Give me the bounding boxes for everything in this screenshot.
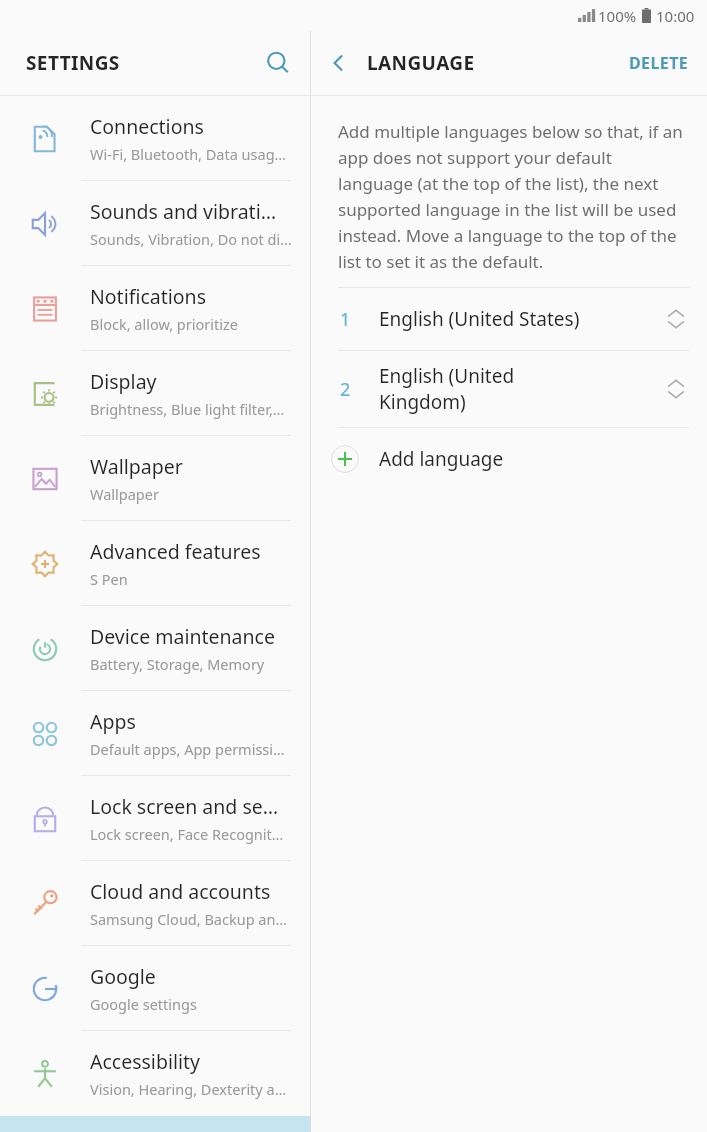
- button[interactable]: Device maintenance: [0, 606, 310, 691]
- button[interactable]: Notifications: [0, 266, 310, 351]
- button[interactable]: Advanced features: [0, 521, 310, 606]
- staticText: Display: [90, 368, 157, 395]
- staticText: Brightness, Blue light filter,…: [90, 399, 285, 419]
- staticText: 2: [340, 377, 351, 402]
- staticText: Connections: [90, 113, 204, 140]
- button[interactable]: Lock screen and se…: [0, 776, 310, 861]
- staticText: English (United Kingdom): [379, 363, 645, 415]
- button[interactable]: Google: [0, 946, 310, 1031]
- staticText: Sounds, Vibration, Do not di…: [90, 229, 292, 249]
- button[interactable]: 2: [311, 351, 707, 427]
- button[interactable]: Sounds and vibrati…: [0, 181, 310, 266]
- button[interactable]: 1: [311, 288, 707, 350]
- staticText: Sounds and vibrati…: [90, 198, 277, 225]
- staticText: English (United States): [379, 306, 645, 332]
- staticText: Block, allow, prioritize: [90, 314, 238, 334]
- staticText: Wallpaper: [90, 484, 159, 504]
- staticText: 1: [340, 307, 351, 332]
- staticText: Google settings: [90, 994, 197, 1014]
- staticText: Lock screen, Face Recognit…: [90, 824, 284, 844]
- button[interactable]: Cloud and accounts: [0, 861, 310, 946]
- button[interactable]: Reorder: [645, 288, 707, 350]
- staticText: LANGUAGE: [367, 50, 611, 76]
- staticText: 10:00: [656, 6, 695, 26]
- button[interactable]: Back: [311, 35, 367, 91]
- staticText: DELETE: [629, 52, 689, 74]
- staticText: Battery, Storage, Memory: [90, 654, 265, 674]
- staticText: Device maintenance: [90, 623, 275, 650]
- button[interactable]: Search: [250, 35, 306, 91]
- staticText: Lock screen and se…: [90, 793, 279, 820]
- staticText: Add language: [379, 446, 504, 472]
- button[interactable]: Apps: [0, 691, 310, 776]
- staticText: SETTINGS: [26, 50, 250, 76]
- button[interactable]: Display: [0, 351, 310, 436]
- staticText: Apps: [90, 708, 136, 735]
- staticText: Add multiple languages below so that, if…: [338, 120, 689, 273]
- staticText: S Pen: [90, 569, 128, 589]
- staticText: Accessibility: [90, 1048, 200, 1075]
- staticText: Notifications: [90, 283, 206, 310]
- staticText: Cloud and accounts: [90, 878, 271, 905]
- button[interactable]: Wallpaper: [0, 436, 310, 521]
- staticText: Google: [90, 963, 156, 990]
- button[interactable]: DELETE: [611, 38, 707, 88]
- staticText: Wallpaper: [90, 453, 183, 480]
- staticText: Wi-Fi, Bluetooth, Data usag…: [90, 144, 287, 164]
- staticText: Vision, Hearing, Dexterity a…: [90, 1079, 287, 1099]
- staticText: 100%: [598, 6, 637, 26]
- button[interactable]: Accessibility: [0, 1031, 310, 1116]
- staticText: Advanced features: [90, 538, 261, 565]
- staticText: Default apps, App permissi…: [90, 739, 285, 759]
- button[interactable]: Connections: [0, 96, 310, 181]
- button[interactable]: Add language: [311, 428, 707, 490]
- button[interactable]: Reorder: [645, 351, 707, 427]
- staticText: Samsung Cloud, Backup an…: [90, 909, 287, 929]
